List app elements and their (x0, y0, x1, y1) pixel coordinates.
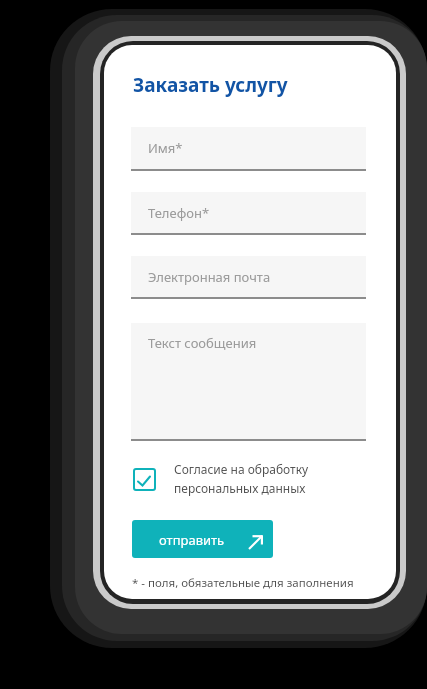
staticText: персональных данных (174, 480, 306, 496)
button[interactable]: отправить (132, 520, 273, 558)
button[interactable] (133, 468, 156, 491)
staticText: Электронная почта (148, 268, 271, 286)
staticText: Текст сообщения (148, 334, 257, 352)
staticText: Имя* (148, 139, 183, 157)
staticText: Согласие на обработку (174, 461, 309, 477)
button[interactable]: Имя* (131, 127, 366, 171)
staticText: Телефон* (148, 204, 210, 222)
button[interactable]: Электронная почта (131, 256, 366, 299)
staticText: отправить (159, 531, 225, 549)
staticText: * - поля, обязательные для заполнения (132, 575, 354, 591)
button[interactable]: Телефон* (131, 192, 366, 235)
button[interactable]: Текст сообщения (131, 323, 366, 441)
staticText: Заказать услугу (133, 72, 288, 98)
